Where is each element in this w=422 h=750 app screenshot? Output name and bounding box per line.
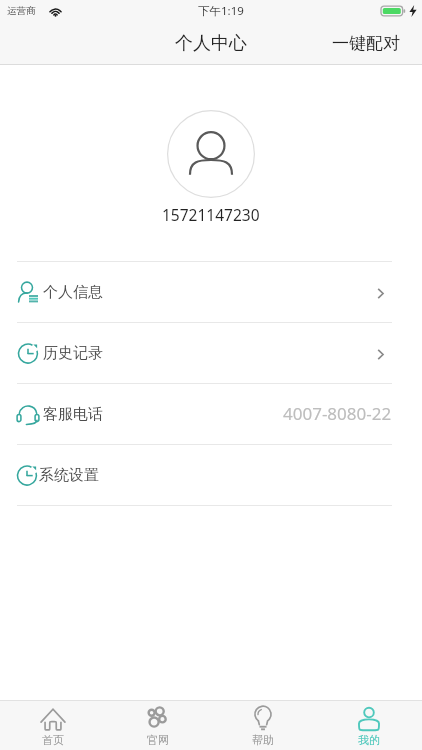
staticText: 个人信息 (43, 283, 103, 302)
button[interactable]: 我的 (316, 701, 422, 750)
staticText: 帮助 (252, 733, 274, 747)
button[interactable]: 官网 (105, 701, 210, 750)
staticText: 个人中心 (175, 32, 247, 55)
button[interactable]: 一键配对 (322, 27, 422, 60)
staticText: 客服电话 (43, 405, 103, 424)
staticText: 我的 (358, 733, 380, 747)
button[interactable]: 个人信息 (0, 262, 422, 322)
staticText: 一键配对 (332, 33, 400, 54)
staticText: 历史记录 (43, 344, 103, 363)
staticText: 首页 (42, 733, 64, 747)
staticText: 运营商 (7, 5, 36, 17)
button[interactable]: 帮助 (210, 701, 316, 750)
button[interactable]: 历史记录 (0, 323, 422, 383)
button[interactable]: 系统设置 (0, 445, 422, 505)
staticText: 官网 (147, 733, 169, 747)
button[interactable]: 首页 (0, 701, 105, 750)
staticText: 15721147230 (162, 204, 260, 225)
button[interactable]: 客服电话 (0, 384, 422, 444)
staticText: 系统设置 (39, 466, 99, 485)
staticText: 4007-8080-22 (283, 402, 392, 425)
staticText: 下午1:19 (198, 3, 244, 19)
